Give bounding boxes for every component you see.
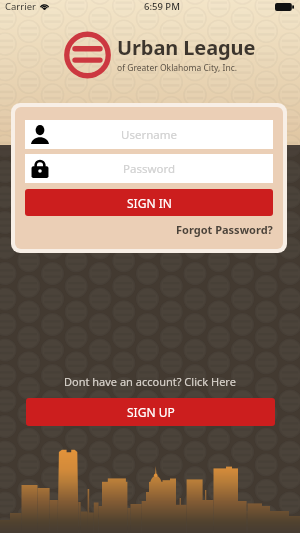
other: Password [31,159,49,178]
staticText: Urban League [117,34,256,61]
button[interactable]: Forgot Password? [166,220,283,239]
button[interactable]: Dont have an account? Click Here [58,372,242,391]
staticText: SIGN IN [127,195,172,211]
staticText: Password [123,161,176,177]
button[interactable]: SIGN UP [26,398,275,426]
button[interactable]: Password [25,154,273,183]
staticText: SIGN UP [127,404,175,420]
staticText: Dont have an account? Click Here [64,374,236,389]
staticText: Carrier [5,0,36,13]
staticText: of Greater Oklahoma City, Inc. [117,62,238,74]
button[interactable]: SIGN IN [25,189,273,216]
button[interactable]: Username [25,120,273,149]
staticText: Username [121,127,177,143]
other: Username [31,125,49,144]
staticText: 6:59 PM [144,0,180,13]
staticText: Forgot Password? [176,222,273,237]
